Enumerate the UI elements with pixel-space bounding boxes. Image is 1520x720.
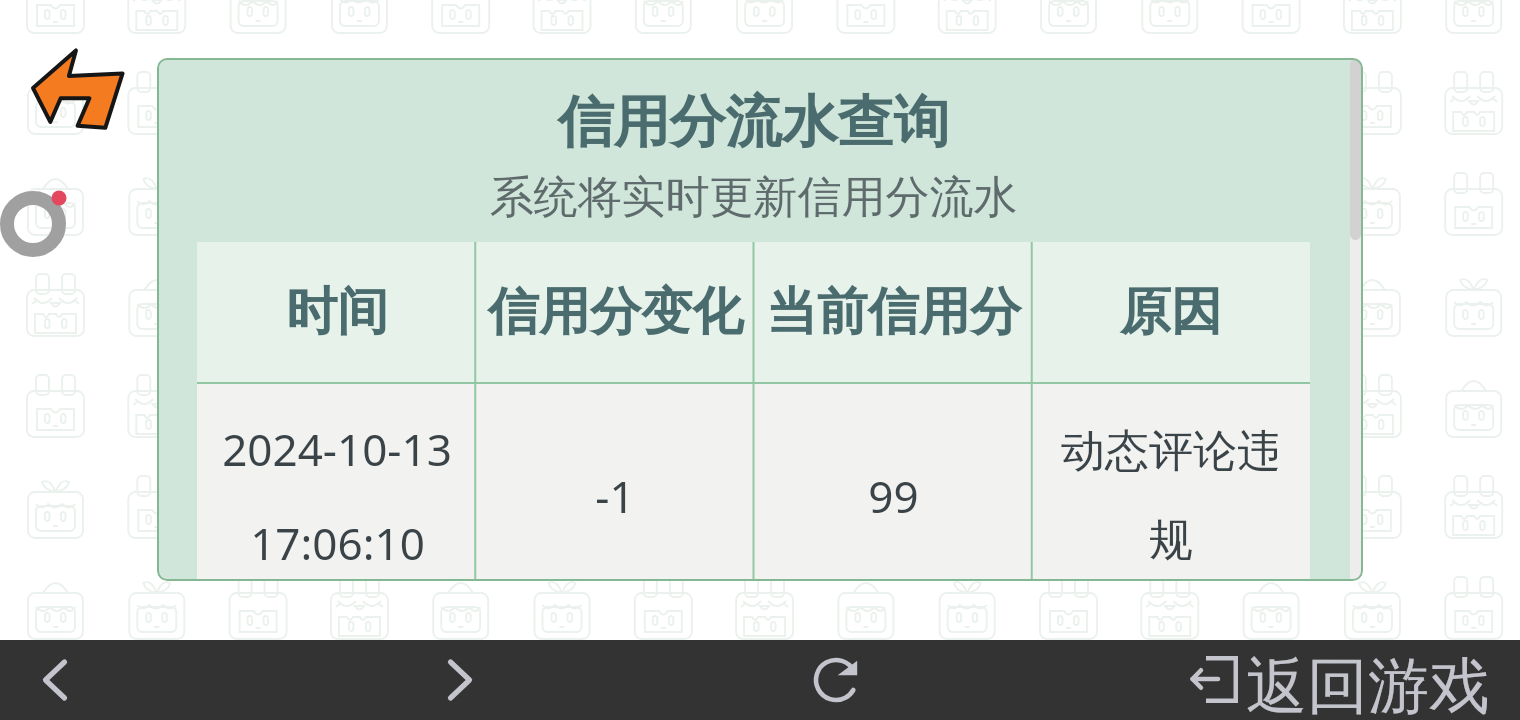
button[interactable]: 返回 <box>25 46 135 143</box>
staticText: 动态评论违 <box>1061 424 1281 479</box>
staticText: 信用分变化 <box>488 280 743 344</box>
staticText: 系统将实时更新信用分流水 <box>157 170 1350 225</box>
staticText: 当前信用分 <box>766 280 1021 344</box>
button[interactable]: 2024-10-13 <box>197 384 1310 581</box>
button[interactable]: 返回游戏 <box>1190 640 1490 720</box>
staticText: 规 <box>1149 513 1193 568</box>
staticText: 2024-10-13 <box>222 419 452 479</box>
button[interactable]: 后退 <box>8 640 102 720</box>
button[interactable]: 菜单 <box>0 172 85 262</box>
button[interactable]: 刷新 <box>789 640 883 720</box>
staticText: 17:06:10 <box>250 513 425 573</box>
staticText: 信用分流水查询 <box>157 87 1350 158</box>
staticText: 原因 <box>1120 280 1222 344</box>
staticText: 99 <box>868 466 919 526</box>
staticText: 时间 <box>286 280 388 344</box>
button[interactable]: 前进 <box>413 640 507 720</box>
staticText: -1 <box>595 466 635 526</box>
staticText: 返回游戏 <box>1246 648 1490 720</box>
